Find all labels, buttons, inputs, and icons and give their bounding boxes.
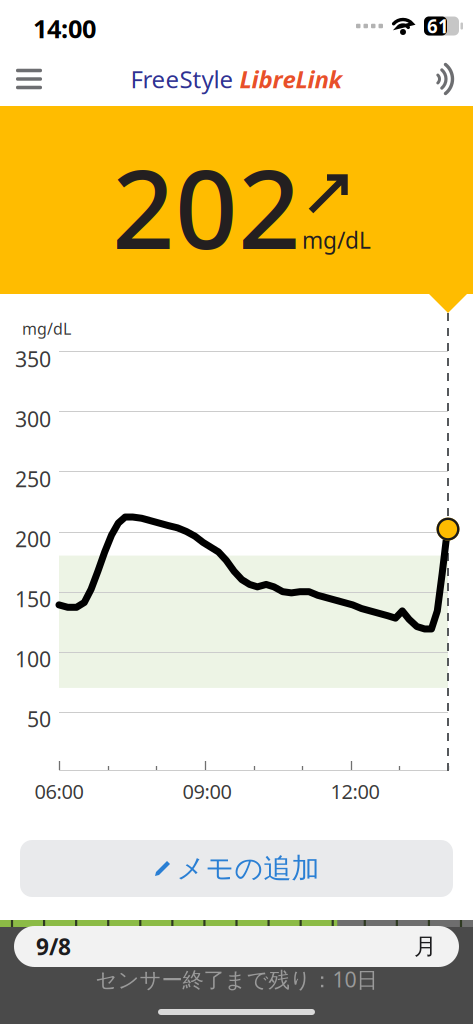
staticText: 12:00 [330,778,379,805]
staticText: 300 [15,405,51,433]
staticText: 200 [15,525,51,553]
staticText: 61 [427,14,449,38]
staticText: 月 [414,933,437,960]
staticText: 9/8 [36,931,71,961]
button[interactable]: 9/8 [14,926,459,967]
staticText: 50 [27,705,51,733]
staticText: 350 [15,345,51,373]
staticText: 150 [15,585,51,613]
staticText: FreeStyle [130,63,233,95]
staticText: mg/dL [22,318,71,339]
staticText: センサー終了まで残り：10日 [95,965,377,993]
staticText: メモの追加 [176,851,319,886]
staticText: 14:00 [33,12,96,45]
staticText: mg/dL [302,225,371,255]
button[interactable]: Scan sensor [415,52,473,106]
staticText: LibreLink [239,63,342,95]
staticText: 202 [112,134,301,279]
button[interactable]: Menu [0,52,58,106]
staticText: 250 [15,465,51,493]
button[interactable]: メモの追加 [20,840,453,897]
staticText: 06:00 [34,778,83,805]
staticText: 09:00 [182,778,231,805]
staticText: 100 [15,645,51,673]
